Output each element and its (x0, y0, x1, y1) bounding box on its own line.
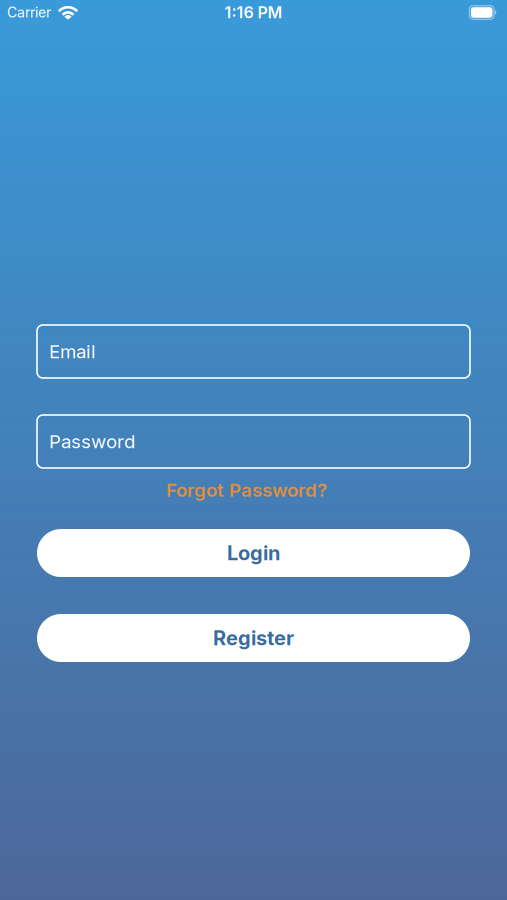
staticText: Login (227, 541, 280, 565)
button[interactable]: Register (37, 614, 470, 662)
staticText: Password (49, 430, 135, 452)
textField[interactable]: Email (37, 325, 470, 378)
staticText: Register (213, 626, 294, 650)
staticText: Forgot Password? (166, 479, 327, 501)
staticText: Email (49, 340, 96, 362)
staticText: Carrier (7, 4, 51, 21)
staticText: 1:16 PM (224, 3, 282, 22)
textField[interactable]: Password (37, 415, 470, 468)
button[interactable]: Forgot Password? (166, 479, 327, 501)
button[interactable]: Login (37, 529, 470, 577)
